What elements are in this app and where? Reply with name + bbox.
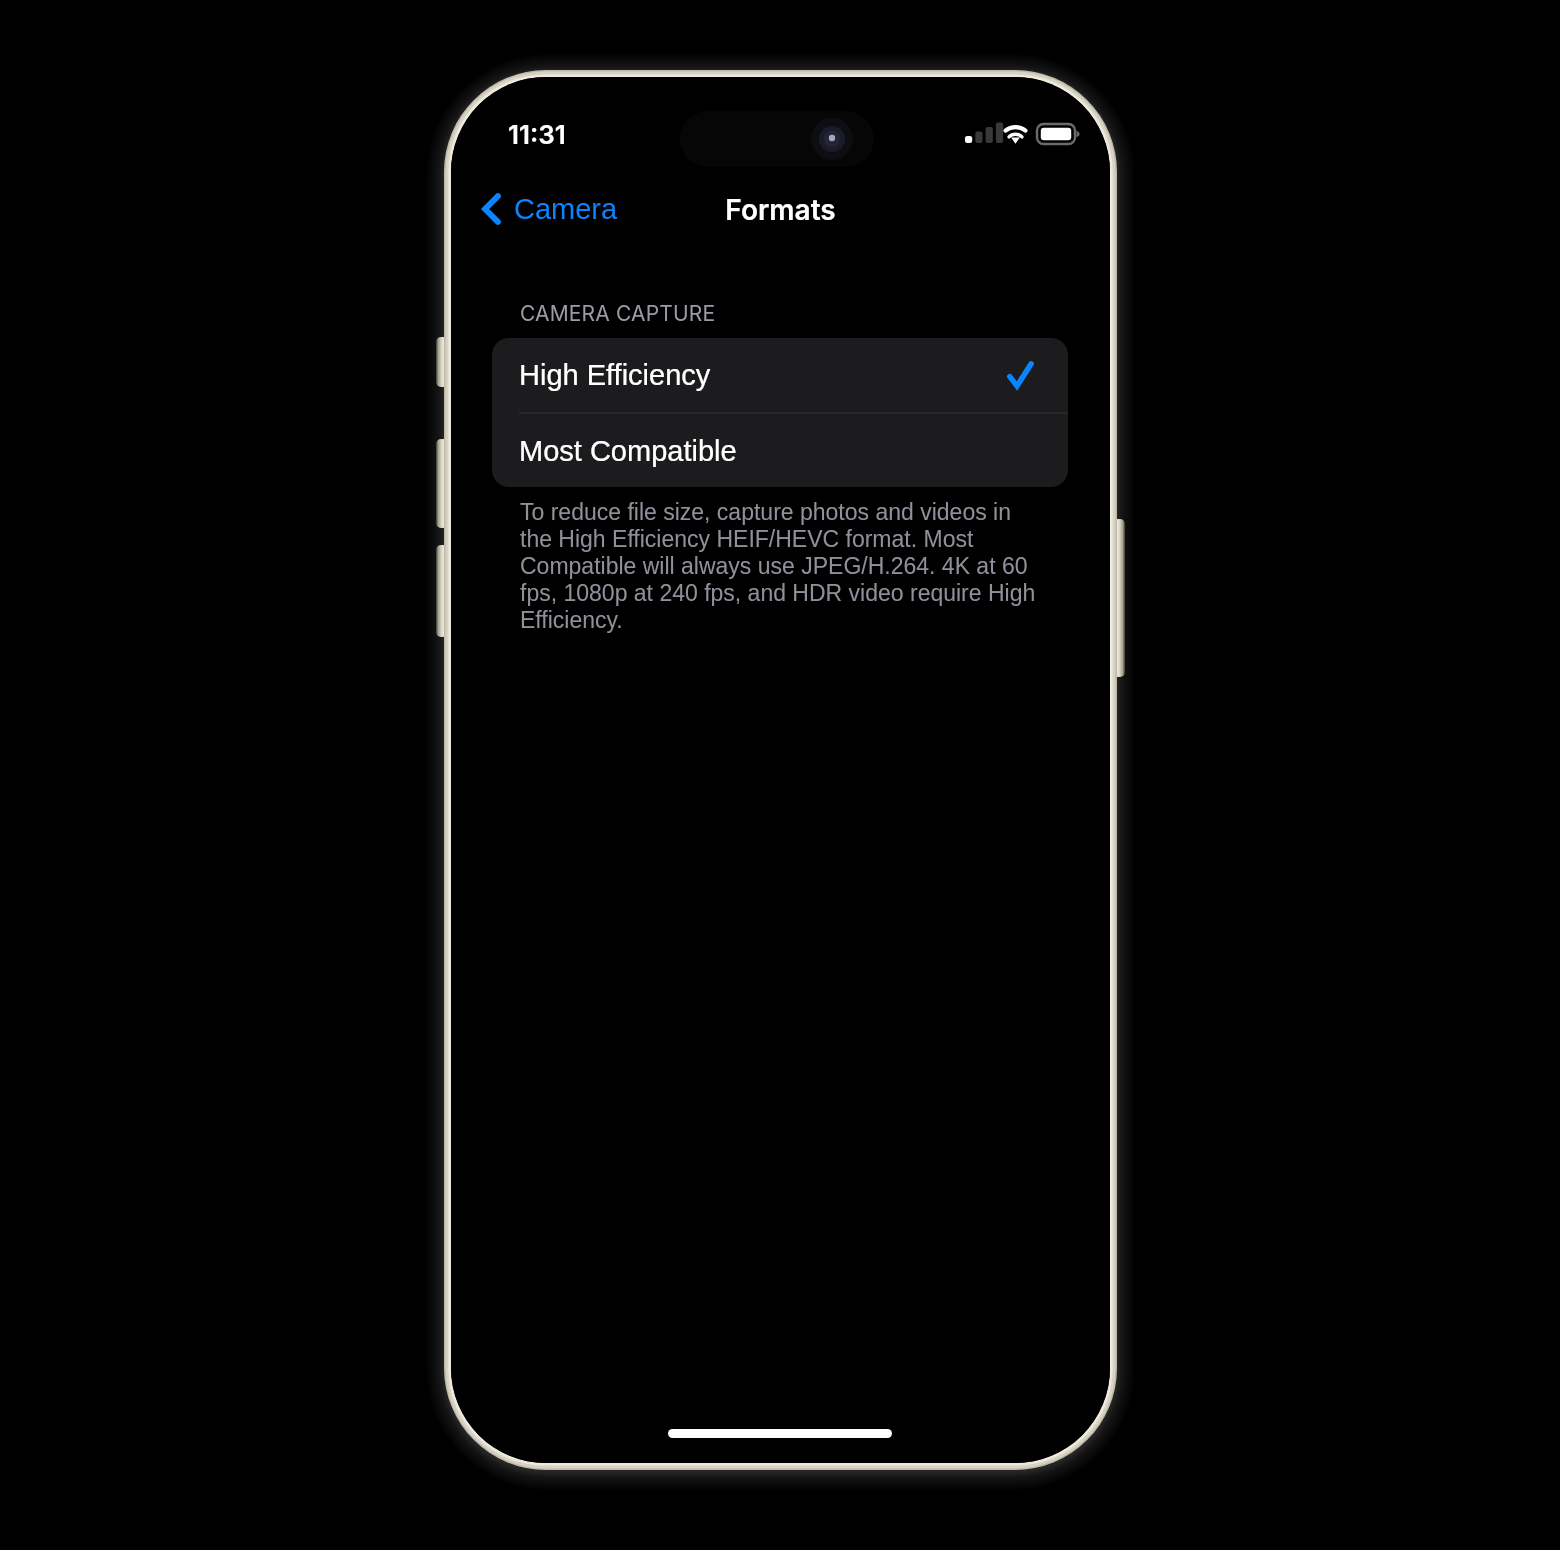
other: Back to Camera <box>482 193 501 225</box>
other: Signal, Wi-Fi, Battery <box>963 121 1089 147</box>
staticText: To reduce file size, capture photos and … <box>520 499 1038 633</box>
staticText: High Efficiency <box>519 359 711 391</box>
staticText: 11:31 <box>508 119 566 150</box>
button[interactable]: Back to Camera <box>465 186 632 232</box>
staticText: Most Compatible <box>519 435 737 467</box>
staticText: Formats <box>451 193 1110 227</box>
button[interactable]: Most Compatible <box>492 414 1068 487</box>
other: Selected <box>1007 361 1034 389</box>
staticText: CAMERA CAPTURE <box>520 301 716 326</box>
button[interactable]: High Efficiency <box>492 338 1068 412</box>
staticText: Camera <box>514 193 618 225</box>
